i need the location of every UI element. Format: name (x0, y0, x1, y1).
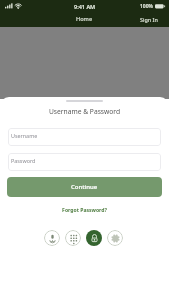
staticText: Username & Password (0, 107, 169, 116)
button[interactable]: Sign In (133, 12, 169, 27)
staticText: Password (11, 157, 36, 164)
button[interactable]: Password (8, 153, 161, 171)
button[interactable]: Settings (107, 230, 123, 246)
staticText: Username (11, 132, 38, 139)
staticText: Continue (71, 183, 98, 191)
button[interactable]: Home (69, 11, 100, 27)
button[interactable]: Forgot Password? (0, 206, 169, 215)
button[interactable]: Keypad (65, 230, 81, 246)
button[interactable]: Username (8, 128, 161, 146)
button[interactable]: Secure login (86, 230, 102, 246)
button[interactable]: Continue (7, 177, 162, 197)
button[interactable]: Voice input (44, 230, 60, 246)
staticText: 9:41 AM (74, 3, 96, 10)
staticText: Sign In (140, 16, 158, 23)
staticText: Home (76, 15, 93, 23)
staticText: 100% (140, 3, 153, 10)
staticText: Forgot Password? (62, 207, 107, 214)
